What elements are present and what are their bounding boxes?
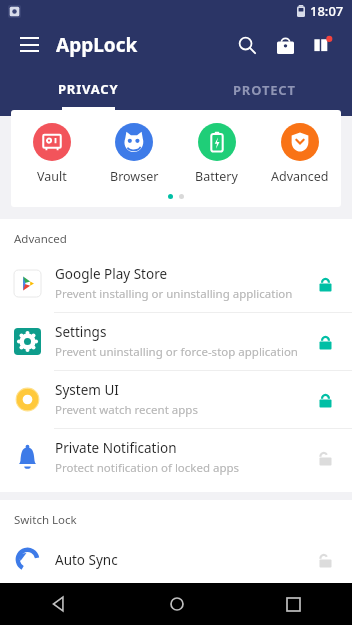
other: Unlocked	[312, 445, 338, 471]
button[interactable]: Battery	[175, 121, 258, 187]
staticText: Switch Lock	[14, 512, 77, 528]
button[interactable]: Advanced	[258, 121, 341, 187]
staticText: PRIVACY	[58, 80, 119, 98]
button[interactable]: Settings	[0, 313, 352, 370]
staticText: 18:07	[310, 2, 344, 20]
button[interactable]: Google Play Store	[0, 255, 352, 312]
staticText: Vault	[37, 168, 67, 185]
staticText: Prevent installing or uninstalling appli…	[55, 286, 293, 302]
staticText: Auto Sync	[55, 551, 118, 569]
staticText: Advanced	[14, 231, 67, 247]
button[interactable]: Search	[230, 28, 264, 62]
staticText: Protect notification of locked apps	[55, 460, 240, 476]
staticText: Settings	[55, 323, 107, 341]
other: Locked	[312, 387, 338, 413]
button[interactable]: Home	[118, 583, 235, 625]
other: Unlocked	[312, 547, 338, 573]
staticText: Google Play Store	[55, 265, 168, 283]
staticText: Private Notification	[55, 439, 177, 457]
button[interactable]: System UI	[0, 371, 352, 428]
staticText: System UI	[55, 381, 119, 399]
staticText: Battery	[195, 168, 238, 185]
button[interactable]: Notifications	[306, 28, 340, 62]
button[interactable]: Store	[268, 28, 302, 62]
button[interactable]: Private Notification	[0, 429, 352, 486]
staticText: Prevent uninstalling or force-stop appli…	[55, 344, 298, 360]
button[interactable]: Auto Sync	[0, 536, 352, 583]
button[interactable]: PROTECT	[176, 68, 352, 110]
button[interactable]: Back	[0, 583, 118, 625]
staticText: Browser	[110, 168, 159, 185]
button[interactable]: Vault	[11, 121, 93, 187]
staticText: PROTECT	[233, 81, 296, 99]
staticText: AppLock	[56, 32, 138, 58]
button[interactable]: PRIVACY	[0, 68, 176, 110]
button[interactable]: Recents	[235, 583, 352, 625]
button[interactable]: Browser	[93, 121, 175, 187]
staticText: Advanced	[271, 168, 329, 185]
staticText: Prevent watch recent apps	[55, 402, 198, 418]
other: Locked	[312, 271, 338, 297]
other: Locked	[312, 329, 338, 355]
button[interactable]: Menu	[12, 28, 46, 62]
